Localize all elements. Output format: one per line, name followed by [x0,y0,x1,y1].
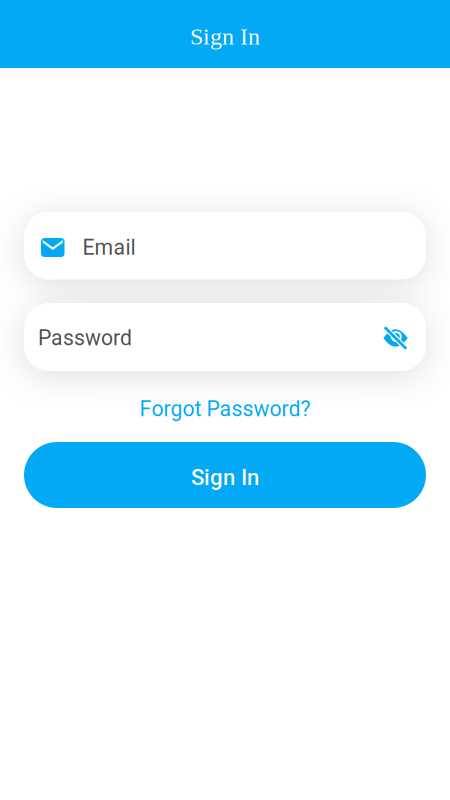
staticText: Sign In [191,464,259,490]
staticText: Password [38,326,132,350]
button[interactable]: Forgot Password? [125,394,325,424]
staticText: Forgot Password? [139,397,310,421]
button[interactable]: Sign In [24,442,426,508]
staticText: Sign In [190,23,260,50]
staticText: Email [82,235,135,260]
button[interactable]: Show password [383,325,408,350]
